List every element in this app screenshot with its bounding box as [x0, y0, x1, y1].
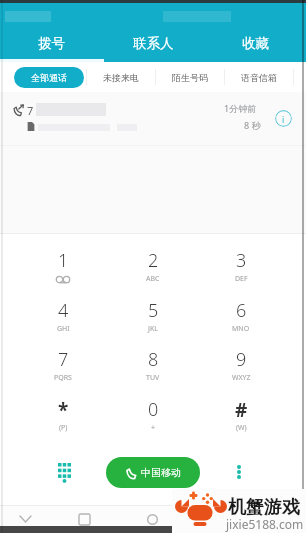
staticText: 6 — [236, 298, 247, 322]
button[interactable]: 0 — [120, 391, 186, 440]
button[interactable]: 7 — [30, 341, 96, 390]
button[interactable]: 未接来电 — [86, 62, 155, 92]
button[interactable]: 5 — [120, 292, 186, 341]
staticText: GHI — [57, 324, 70, 334]
staticText: 1分钟前 — [224, 102, 257, 114]
staticText: 7 — [58, 347, 69, 371]
button[interactable]: 中国移动 — [106, 457, 200, 488]
button[interactable]: Show dialpad — [47, 455, 81, 489]
staticText: MNO — [232, 324, 250, 334]
staticText: WXYZ — [232, 373, 251, 383]
button[interactable]: 全部通话 — [14, 67, 84, 88]
staticText: 拨号 — [38, 35, 65, 52]
button[interactable]: Home — [74, 509, 94, 529]
staticText: DEF — [235, 274, 248, 284]
staticText: PQRS — [54, 373, 72, 383]
staticText: ABC — [146, 274, 160, 284]
button[interactable]: 拨号 — [0, 27, 102, 59]
staticText: (P) — [59, 423, 68, 433]
button[interactable]: 陌生号码 — [155, 62, 224, 92]
button[interactable]: 8 — [120, 341, 186, 390]
button[interactable]: # — [208, 391, 274, 440]
button[interactable]: 2 — [120, 242, 186, 291]
button[interactable]: * — [30, 391, 96, 440]
button[interactable]: 收藏 — [204, 27, 306, 59]
staticText: 全部通话 — [31, 72, 67, 83]
staticText: 8 秒 — [244, 119, 261, 131]
staticText: 机蟹游戏 — [228, 496, 300, 519]
staticText: TUV — [146, 373, 160, 383]
button[interactable]: 9 — [208, 341, 274, 390]
staticText: 联系人 — [133, 35, 174, 52]
staticText: JKL — [148, 324, 158, 334]
staticText: 收藏 — [242, 35, 269, 52]
button[interactable]: 1 — [30, 242, 96, 291]
staticText: 4 — [58, 298, 69, 322]
staticText: 2 — [148, 248, 159, 272]
staticText: 中国移动 — [141, 466, 181, 479]
staticText: 语音信箱 — [241, 72, 277, 83]
staticText: 9 — [236, 347, 247, 371]
staticText: + — [151, 423, 156, 433]
staticText: * — [58, 397, 69, 421]
staticText: 3 — [236, 248, 247, 272]
button[interactable]: 联系人 — [102, 27, 204, 59]
staticText: 未接来电 — [103, 72, 139, 83]
button[interactable]: Recent apps — [142, 509, 162, 529]
staticText: 5 — [148, 298, 159, 322]
button[interactable]: Back — [15, 509, 35, 529]
button[interactable]: 语音信箱 — [224, 62, 293, 92]
staticText: i — [282, 113, 285, 125]
button[interactable]: 4 — [30, 292, 96, 341]
button[interactable]: Call details — [275, 110, 292, 127]
staticText: 8 — [148, 347, 159, 371]
staticText: # — [235, 397, 248, 421]
staticText: 1 — [58, 248, 69, 272]
button[interactable]: More options — [222, 455, 256, 489]
staticText: 陌生号码 — [172, 72, 208, 83]
staticText: 7 — [27, 103, 34, 118]
button[interactable]: 3 — [208, 242, 274, 291]
staticText: (W) — [236, 423, 247, 433]
staticText: jixie5188.com — [226, 516, 304, 532]
button[interactable]: 7 — [0, 92, 306, 145]
button[interactable]: 6 — [208, 292, 274, 341]
staticText: 0 — [148, 397, 159, 421]
